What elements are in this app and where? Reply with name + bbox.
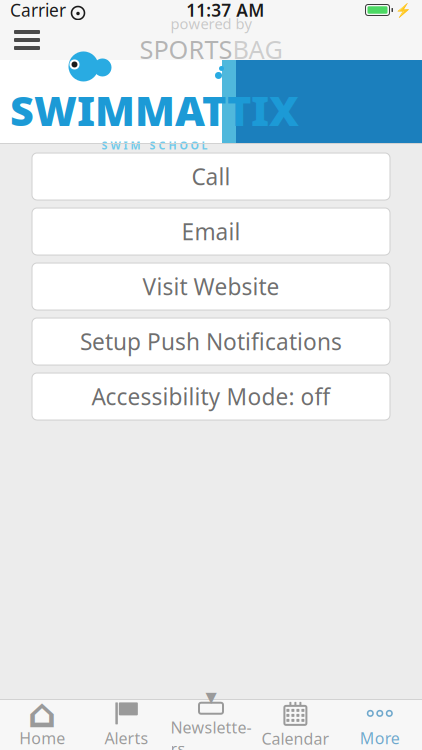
staticText: Home bbox=[19, 727, 65, 749]
staticText: ▼ bbox=[205, 689, 216, 705]
staticText: Carrier bbox=[10, 0, 66, 21]
staticText: BAG bbox=[232, 32, 282, 66]
staticText: Accessibility Mode: off bbox=[91, 381, 330, 411]
button[interactable]: Email bbox=[32, 208, 390, 255]
button[interactable]: Setup Push Notifications bbox=[32, 318, 390, 365]
staticText: ⌂ bbox=[28, 691, 57, 736]
button[interactable]: Accessibility Mode: off bbox=[32, 373, 390, 420]
staticText: ⚡ bbox=[395, 2, 412, 18]
staticText: Setup Push Notifications bbox=[80, 326, 342, 356]
staticText: Alerts bbox=[105, 727, 149, 749]
staticText: More bbox=[360, 727, 400, 749]
staticText: 11:37 AM bbox=[186, 0, 264, 21]
staticText: Email bbox=[181, 216, 240, 246]
button[interactable]: Alerts bbox=[84, 700, 169, 750]
staticText: Newsletters bbox=[170, 717, 251, 750]
button[interactable]: More bbox=[338, 700, 422, 750]
staticText: Visit Website bbox=[142, 271, 279, 301]
staticText: SPORTS bbox=[139, 32, 232, 66]
staticText: Call bbox=[191, 161, 230, 191]
button[interactable]: Menu bbox=[4, 20, 50, 60]
button[interactable]: Calendar bbox=[253, 700, 338, 750]
staticText: powered by bbox=[170, 14, 251, 33]
button[interactable]: Call bbox=[32, 153, 390, 200]
button[interactable]: ▼ bbox=[169, 700, 253, 750]
button[interactable]: Visit Website bbox=[32, 263, 390, 310]
staticText: SWIMMATTIX bbox=[10, 82, 299, 137]
staticText: S W I M S C H O O L bbox=[101, 138, 207, 153]
button[interactable]: ⌂ bbox=[0, 700, 84, 750]
staticText: Calendar bbox=[261, 728, 329, 749]
